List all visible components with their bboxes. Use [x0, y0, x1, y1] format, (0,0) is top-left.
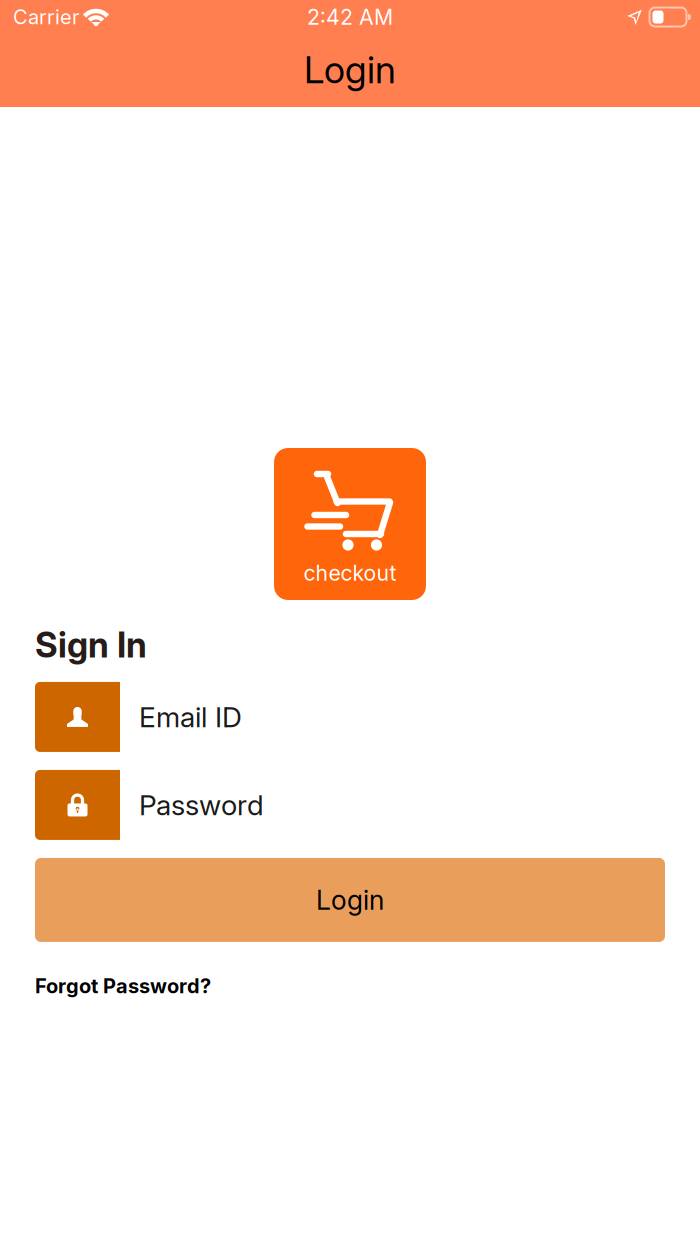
staticText: Login [316, 884, 384, 916]
staticText: Password [139, 788, 264, 822]
button[interactable]: Forgot Password? [35, 974, 665, 998]
staticText: Forgot Password? [35, 974, 211, 998]
staticText: checkout [303, 560, 396, 586]
staticText: 2:42 AM [307, 4, 393, 30]
staticText: Carrier [13, 5, 79, 29]
staticText: Sign In [35, 624, 147, 666]
button[interactable]: Password [35, 770, 665, 840]
button[interactable]: Email ID [35, 682, 665, 752]
staticText: Email ID [139, 700, 242, 734]
staticText: Login [304, 47, 396, 92]
button[interactable]: Login [35, 858, 665, 942]
